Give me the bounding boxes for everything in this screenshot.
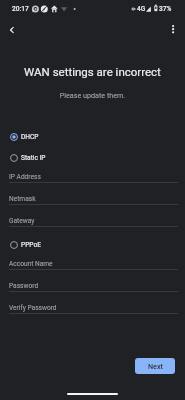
button[interactable]: Password (9, 275, 178, 292)
staticText: 37% (159, 5, 172, 13)
button[interactable]: Netmask (9, 188, 178, 205)
button[interactable]: More options (163, 19, 183, 39)
staticText: 4G (137, 5, 146, 13)
staticText: Next (148, 362, 163, 370)
staticText: Static IP (21, 154, 46, 162)
staticText: Please update them. (0, 91, 185, 99)
button[interactable]: Verify Password (9, 297, 178, 314)
button[interactable]: PPPoE (8, 236, 88, 254)
button[interactable]: Gateway (9, 210, 178, 227)
staticText: Verify Password (9, 304, 57, 312)
staticText: 20:17 (12, 5, 29, 13)
staticText: Account Name (9, 260, 53, 268)
staticText: WAN settings are incorrect (0, 65, 185, 78)
button[interactable]: Back (2, 20, 22, 40)
staticText: Password (9, 282, 39, 290)
staticText: IP Address (9, 173, 41, 181)
staticText: PPPoE (21, 241, 41, 249)
staticText: Gateway (9, 217, 35, 225)
button[interactable]: Static IP (8, 149, 88, 167)
button[interactable]: Next (135, 358, 175, 374)
button[interactable]: IP Address (9, 166, 178, 183)
staticText: Netmask (9, 195, 36, 203)
button[interactable]: DHCP (8, 128, 88, 146)
staticText: DHCP (21, 133, 39, 141)
button[interactable]: Account Name (9, 253, 178, 270)
